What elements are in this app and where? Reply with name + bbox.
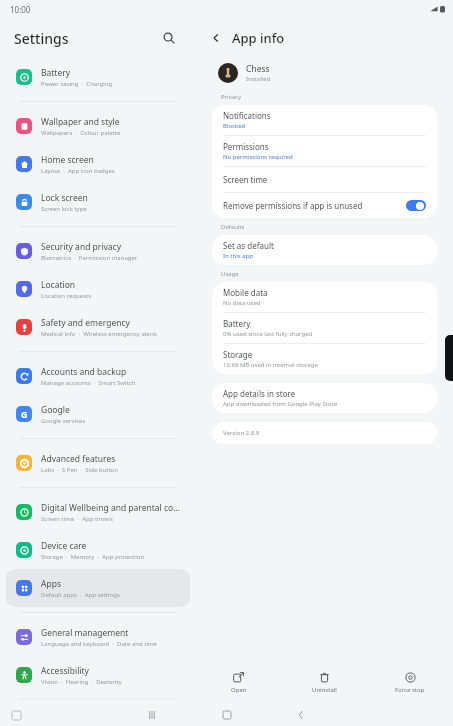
button[interactable]: Device care bbox=[6, 531, 190, 569]
staticText: 10.69 MB used in internal storage bbox=[223, 361, 318, 369]
staticText: Safety and emergency bbox=[41, 317, 130, 329]
staticText: Layout · App icon badges bbox=[41, 167, 115, 175]
staticText: Battery bbox=[223, 318, 251, 329]
button[interactable]: Accessibility bbox=[6, 656, 190, 694]
button[interactable]: Force stop bbox=[367, 662, 453, 704]
button[interactable]: Notifications bbox=[212, 105, 437, 135]
staticText: Digital Wellbeing and parental controls bbox=[41, 502, 182, 514]
button[interactable]: Location bbox=[6, 270, 190, 308]
staticText: Permissions bbox=[223, 141, 269, 152]
staticText: In this app bbox=[223, 252, 253, 260]
button[interactable]: General management bbox=[6, 618, 190, 656]
button[interactable]: Remove permissions if app is unused bbox=[212, 193, 437, 218]
button[interactable]: Chess bbox=[212, 58, 437, 88]
staticText: Storage bbox=[223, 349, 253, 360]
button[interactable]: Mobile data bbox=[212, 282, 437, 312]
button[interactable]: Uninstall bbox=[281, 662, 367, 704]
staticText: Apps bbox=[41, 578, 61, 590]
button[interactable]: G bbox=[6, 395, 190, 433]
staticText: G bbox=[21, 408, 28, 420]
staticText: Home screen bbox=[41, 154, 94, 166]
staticText: Open bbox=[231, 686, 247, 694]
staticText: Blocked bbox=[223, 122, 246, 130]
staticText: Vision · Hearing · Dexterity bbox=[41, 678, 122, 686]
staticText: Default apps · App settings bbox=[41, 591, 120, 599]
button[interactable]: Search bbox=[156, 25, 182, 51]
staticText: Defaults bbox=[221, 223, 245, 231]
button[interactable]: Home screen bbox=[6, 145, 190, 183]
button[interactable]: Back bbox=[204, 26, 228, 50]
staticText: Language and keyboard · Date and time bbox=[41, 640, 157, 648]
staticText: Security and privacy bbox=[41, 241, 122, 253]
staticText: No data used bbox=[223, 299, 261, 307]
staticText: Version 2.8.9 bbox=[223, 429, 260, 437]
staticText: App downloaded from Google Play Store bbox=[223, 400, 338, 408]
staticText: Force stop bbox=[395, 686, 425, 694]
staticText: Wallpaper and style bbox=[41, 116, 120, 128]
button[interactable]: Keyboard bbox=[10, 709, 22, 721]
staticText: 0% used since last fully charged bbox=[223, 330, 313, 338]
staticText: Notifications bbox=[223, 110, 271, 121]
button[interactable]: Accounts and backup bbox=[6, 357, 190, 395]
button[interactable]: Security and privacy bbox=[6, 232, 190, 270]
button[interactable]: Battery bbox=[6, 58, 190, 96]
button[interactable]: Back bbox=[292, 706, 310, 724]
staticText: Screen lock type bbox=[41, 205, 87, 213]
staticText: Screen time · App timers bbox=[41, 515, 113, 523]
staticText: Device care bbox=[41, 540, 87, 552]
staticText: No permissions required bbox=[223, 153, 293, 161]
staticText: Location bbox=[41, 279, 76, 291]
button[interactable]: App details in store bbox=[212, 383, 437, 413]
staticText: Lock screen bbox=[41, 192, 88, 204]
button[interactable]: Wallpaper and style bbox=[6, 107, 190, 145]
staticText: Accounts and backup bbox=[41, 366, 127, 378]
button[interactable]: Apps bbox=[6, 569, 190, 607]
staticText: Screen time bbox=[223, 174, 268, 185]
staticText: Settings bbox=[14, 29, 69, 48]
staticText: Remove permissions if app is unused bbox=[223, 200, 363, 211]
staticText: Medical info · Wireless emergency alerts bbox=[41, 330, 158, 338]
button[interactable]: Toggle bbox=[406, 200, 426, 211]
staticText: Biometrics · Permission manager bbox=[41, 254, 138, 262]
staticText: Power saving · Charging bbox=[41, 80, 113, 88]
button[interactable]: Safety and emergency bbox=[6, 308, 190, 346]
button[interactable]: Set as default bbox=[212, 235, 437, 265]
staticText: Storage · Memory · App protection bbox=[41, 553, 145, 561]
staticText: Mobile data bbox=[223, 287, 268, 298]
staticText: Accessibility bbox=[41, 665, 89, 677]
button[interactable]: Recents bbox=[143, 706, 161, 724]
button[interactable]: Screen time bbox=[212, 167, 437, 192]
button[interactable]: Digital Wellbeing and parental controls bbox=[6, 493, 190, 531]
button[interactable]: Advanced features bbox=[6, 444, 190, 482]
staticText: Advanced features bbox=[41, 453, 116, 465]
button[interactable]: Battery bbox=[212, 313, 437, 343]
staticText: Chess bbox=[246, 63, 270, 75]
staticText: 10:00 bbox=[10, 4, 31, 15]
button[interactable]: Home bbox=[218, 706, 236, 724]
staticText: Set as default bbox=[223, 240, 274, 251]
staticText: Google services bbox=[41, 417, 86, 425]
staticText: Location requests bbox=[41, 292, 92, 300]
staticText: Uninstall bbox=[312, 686, 337, 694]
staticText: General management bbox=[41, 627, 129, 639]
button[interactable]: Storage bbox=[212, 344, 437, 374]
staticText: Manage accounts · Smart Switch bbox=[41, 379, 136, 387]
button[interactable]: Permissions bbox=[212, 136, 437, 166]
staticText: App info bbox=[232, 29, 285, 47]
staticText: Google bbox=[41, 404, 70, 416]
staticText: Installed bbox=[246, 75, 271, 83]
staticText: Labs · S Pen · Side button bbox=[41, 466, 118, 474]
staticText: Privacy bbox=[221, 93, 242, 101]
staticText: Wallpapers · Colour palette bbox=[41, 129, 121, 137]
staticText: Usage bbox=[221, 270, 239, 278]
button[interactable]: Lock screen bbox=[6, 183, 190, 221]
staticText: App details in store bbox=[223, 388, 296, 399]
staticText: Battery bbox=[41, 67, 71, 79]
button[interactable]: Open bbox=[196, 662, 281, 704]
